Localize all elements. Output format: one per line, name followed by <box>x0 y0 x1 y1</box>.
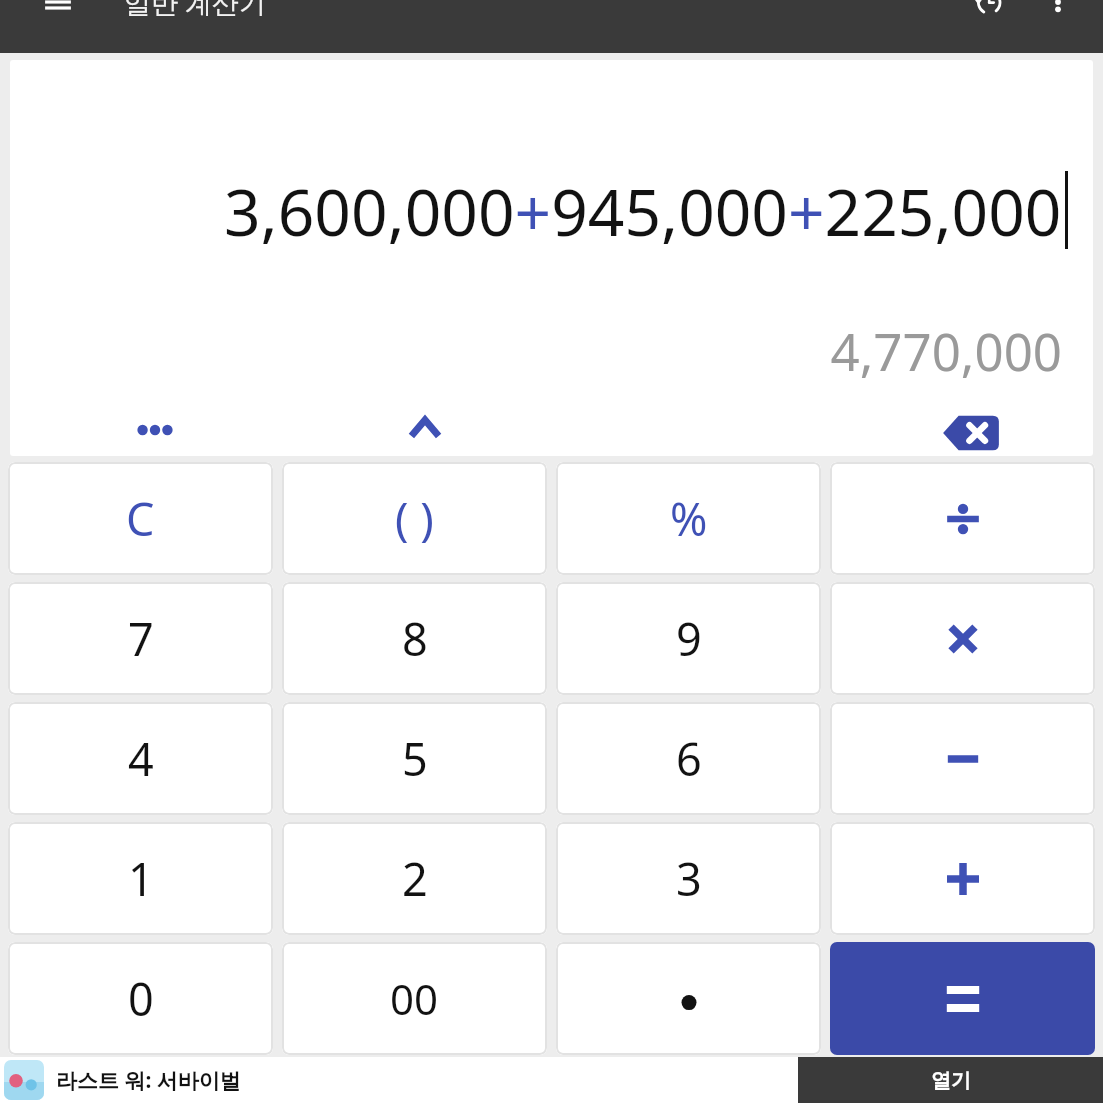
staticText: 7 <box>128 608 154 669</box>
staticText: 3 <box>676 848 702 909</box>
button[interactable]: More options <box>1032 0 1084 28</box>
button[interactable]: 라스트 워: 서바이벌 <box>0 1057 1103 1103</box>
button[interactable]: 0 <box>8 942 273 1055</box>
button[interactable]: 8 <box>282 582 547 695</box>
button[interactable]: 9 <box>556 582 821 695</box>
staticText: 4 <box>128 728 154 789</box>
button[interactable]: More <box>115 390 195 456</box>
button[interactable]: 5 <box>282 702 547 815</box>
button[interactable]: − <box>830 702 1095 815</box>
button[interactable]: Expand <box>385 388 465 456</box>
staticText: 2 <box>402 848 428 909</box>
staticText: 5 <box>402 728 428 789</box>
button[interactable]: 1 <box>8 822 273 935</box>
staticText: 8 <box>402 608 428 669</box>
staticText: 00 <box>390 970 439 1027</box>
button[interactable]: Backspace <box>928 390 1014 456</box>
button[interactable]: 6 <box>556 702 821 815</box>
button[interactable]: 열기 <box>798 1057 1103 1103</box>
staticText: 0 <box>128 968 154 1029</box>
staticText: % <box>670 488 708 549</box>
button[interactable]: . <box>556 942 821 1055</box>
staticText: 4,770,000 <box>830 316 1062 385</box>
button[interactable]: % <box>556 462 821 575</box>
staticText: 열기 <box>931 1068 971 1093</box>
button[interactable]: 00 <box>282 942 547 1055</box>
button[interactable]: 2 <box>282 822 547 935</box>
button[interactable]: ( ) <box>282 462 547 575</box>
staticText: 1 <box>128 848 154 909</box>
staticText: 6 <box>676 728 702 789</box>
button[interactable]: 7 <box>8 582 273 695</box>
button[interactable]: ÷ <box>830 462 1095 575</box>
button[interactable]: 3 <box>556 822 821 935</box>
staticText: 9 <box>676 608 702 669</box>
staticText: 일반 계산기 <box>124 0 267 21</box>
button[interactable]: = <box>830 942 1095 1055</box>
button[interactable]: C <box>8 462 273 575</box>
button[interactable]: Menu <box>34 0 82 26</box>
staticText: ( ) <box>395 488 434 549</box>
staticText: 3,600,000+945,000+225,000 <box>224 168 1062 255</box>
button[interactable]: History <box>962 0 1014 28</box>
staticText: 라스트 워: 서바이벌 <box>56 1066 241 1095</box>
button[interactable]: 4 <box>8 702 273 815</box>
button[interactable]: × <box>830 582 1095 695</box>
button[interactable]: + <box>830 822 1095 935</box>
staticText: C <box>126 488 155 549</box>
